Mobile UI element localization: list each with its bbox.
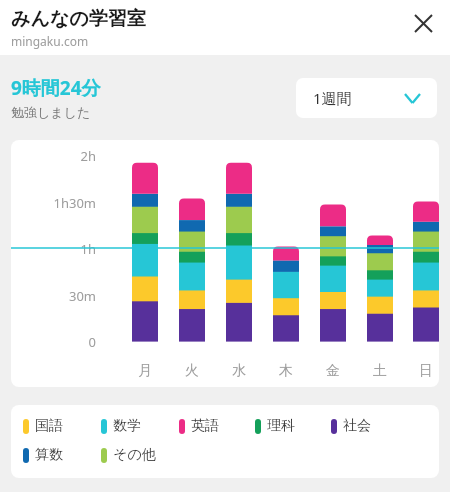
staticText: 火 <box>185 362 199 380</box>
staticText: その他 <box>113 446 156 464</box>
button[interactable]: 1週間 <box>296 78 437 118</box>
staticText: 英語 <box>191 417 219 435</box>
button[interactable]: 数学 <box>101 417 179 435</box>
staticText: 1週間 <box>313 88 352 108</box>
staticText: 木 <box>279 362 293 380</box>
staticText: 月 <box>138 362 152 380</box>
staticText: 水 <box>232 362 246 380</box>
button[interactable]: 算数 <box>23 446 101 464</box>
button[interactable]: その他 <box>101 446 191 464</box>
button[interactable]: 国語 <box>23 417 101 435</box>
staticText: 国語 <box>35 417 63 435</box>
staticText: 30m <box>68 287 96 305</box>
staticText: 社会 <box>343 417 371 435</box>
staticText: 算数 <box>35 446 63 464</box>
staticText: 1h30m <box>53 194 96 212</box>
staticText: 1h <box>80 240 96 258</box>
button[interactable]: 理科 <box>255 417 331 435</box>
staticText: 2h <box>80 147 96 165</box>
staticText: 数学 <box>113 417 141 435</box>
staticText: 金 <box>326 362 340 380</box>
staticText: 勉強しました <box>11 104 91 120</box>
staticText: 土 <box>373 362 387 380</box>
staticText: 9時間24分 <box>11 75 101 101</box>
button[interactable]: 社会 <box>331 417 407 435</box>
staticText: 日 <box>419 362 433 380</box>
button[interactable]: 英語 <box>179 417 255 435</box>
button[interactable]: Close <box>406 6 440 40</box>
staticText: みんなの学習室 <box>11 7 146 31</box>
staticText: 0 <box>88 333 96 351</box>
staticText: mingaku.com <box>11 33 89 49</box>
staticText: 理科 <box>267 417 295 435</box>
